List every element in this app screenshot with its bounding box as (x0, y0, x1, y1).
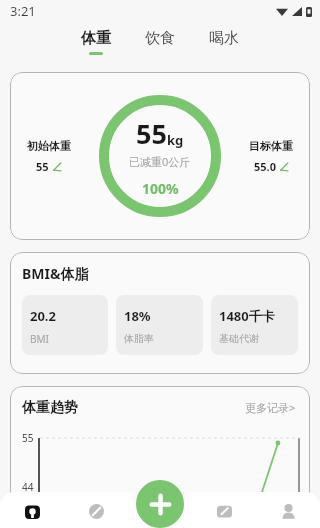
staticText: 已减重0公斤 (129, 154, 191, 169)
staticText: 体重 (81, 29, 111, 48)
staticText: BMI&体脂 (22, 264, 89, 283)
staticText: 20.2 (30, 307, 56, 325)
button[interactable]: BMI&体脂 (10, 252, 310, 374)
button[interactable]: Records (192, 494, 256, 528)
staticText: 体重趋势 (22, 399, 78, 417)
staticText: kg (167, 131, 184, 149)
button[interactable]: 喝水 (202, 27, 246, 57)
staticText: 饮食 (145, 29, 175, 48)
other: Home (24, 503, 41, 520)
button[interactable]: 20.2 (22, 295, 108, 355)
other: Diet (88, 503, 105, 520)
staticText: 55.0 (254, 159, 276, 174)
other: Edit (52, 162, 62, 172)
staticText: BMI (30, 332, 49, 346)
staticText: 1480千卡 (219, 307, 275, 325)
button[interactable]: 体重趋势 (10, 386, 310, 528)
button[interactable]: Diet (64, 494, 128, 528)
staticText: 更多记录> (245, 400, 296, 415)
button[interactable]: Add (136, 480, 184, 528)
staticText: 基础代谢 (219, 332, 259, 345)
staticText: 55 (22, 431, 34, 445)
button[interactable]: Profile (256, 494, 320, 528)
staticText: 体脂率 (124, 332, 154, 345)
button[interactable]: 18% (116, 295, 203, 355)
other: Records (216, 503, 233, 520)
staticText: 初始体重 (27, 139, 71, 153)
staticText: 100% (142, 179, 179, 198)
staticText: 目标体重 (249, 139, 293, 153)
button[interactable]: 1480千卡 (211, 295, 298, 355)
other: Profile (280, 503, 297, 520)
button[interactable]: 体重 (74, 27, 118, 57)
staticText: 喝水 (209, 29, 239, 48)
button[interactable]: Home (0, 494, 64, 528)
staticText: 44 (22, 480, 34, 494)
staticText: 55 (136, 115, 167, 152)
button[interactable]: 55 (10, 72, 310, 240)
button[interactable]: 饮食 (138, 27, 182, 57)
button[interactable]: 更多记录> (243, 398, 298, 417)
staticText: 3:21 (10, 2, 36, 20)
staticText: 18% (124, 307, 151, 325)
other: Edit (279, 162, 289, 172)
staticText: 55 (36, 159, 49, 174)
button[interactable]: 目标体重 (246, 137, 296, 176)
button[interactable]: 初始体重 (24, 137, 74, 176)
